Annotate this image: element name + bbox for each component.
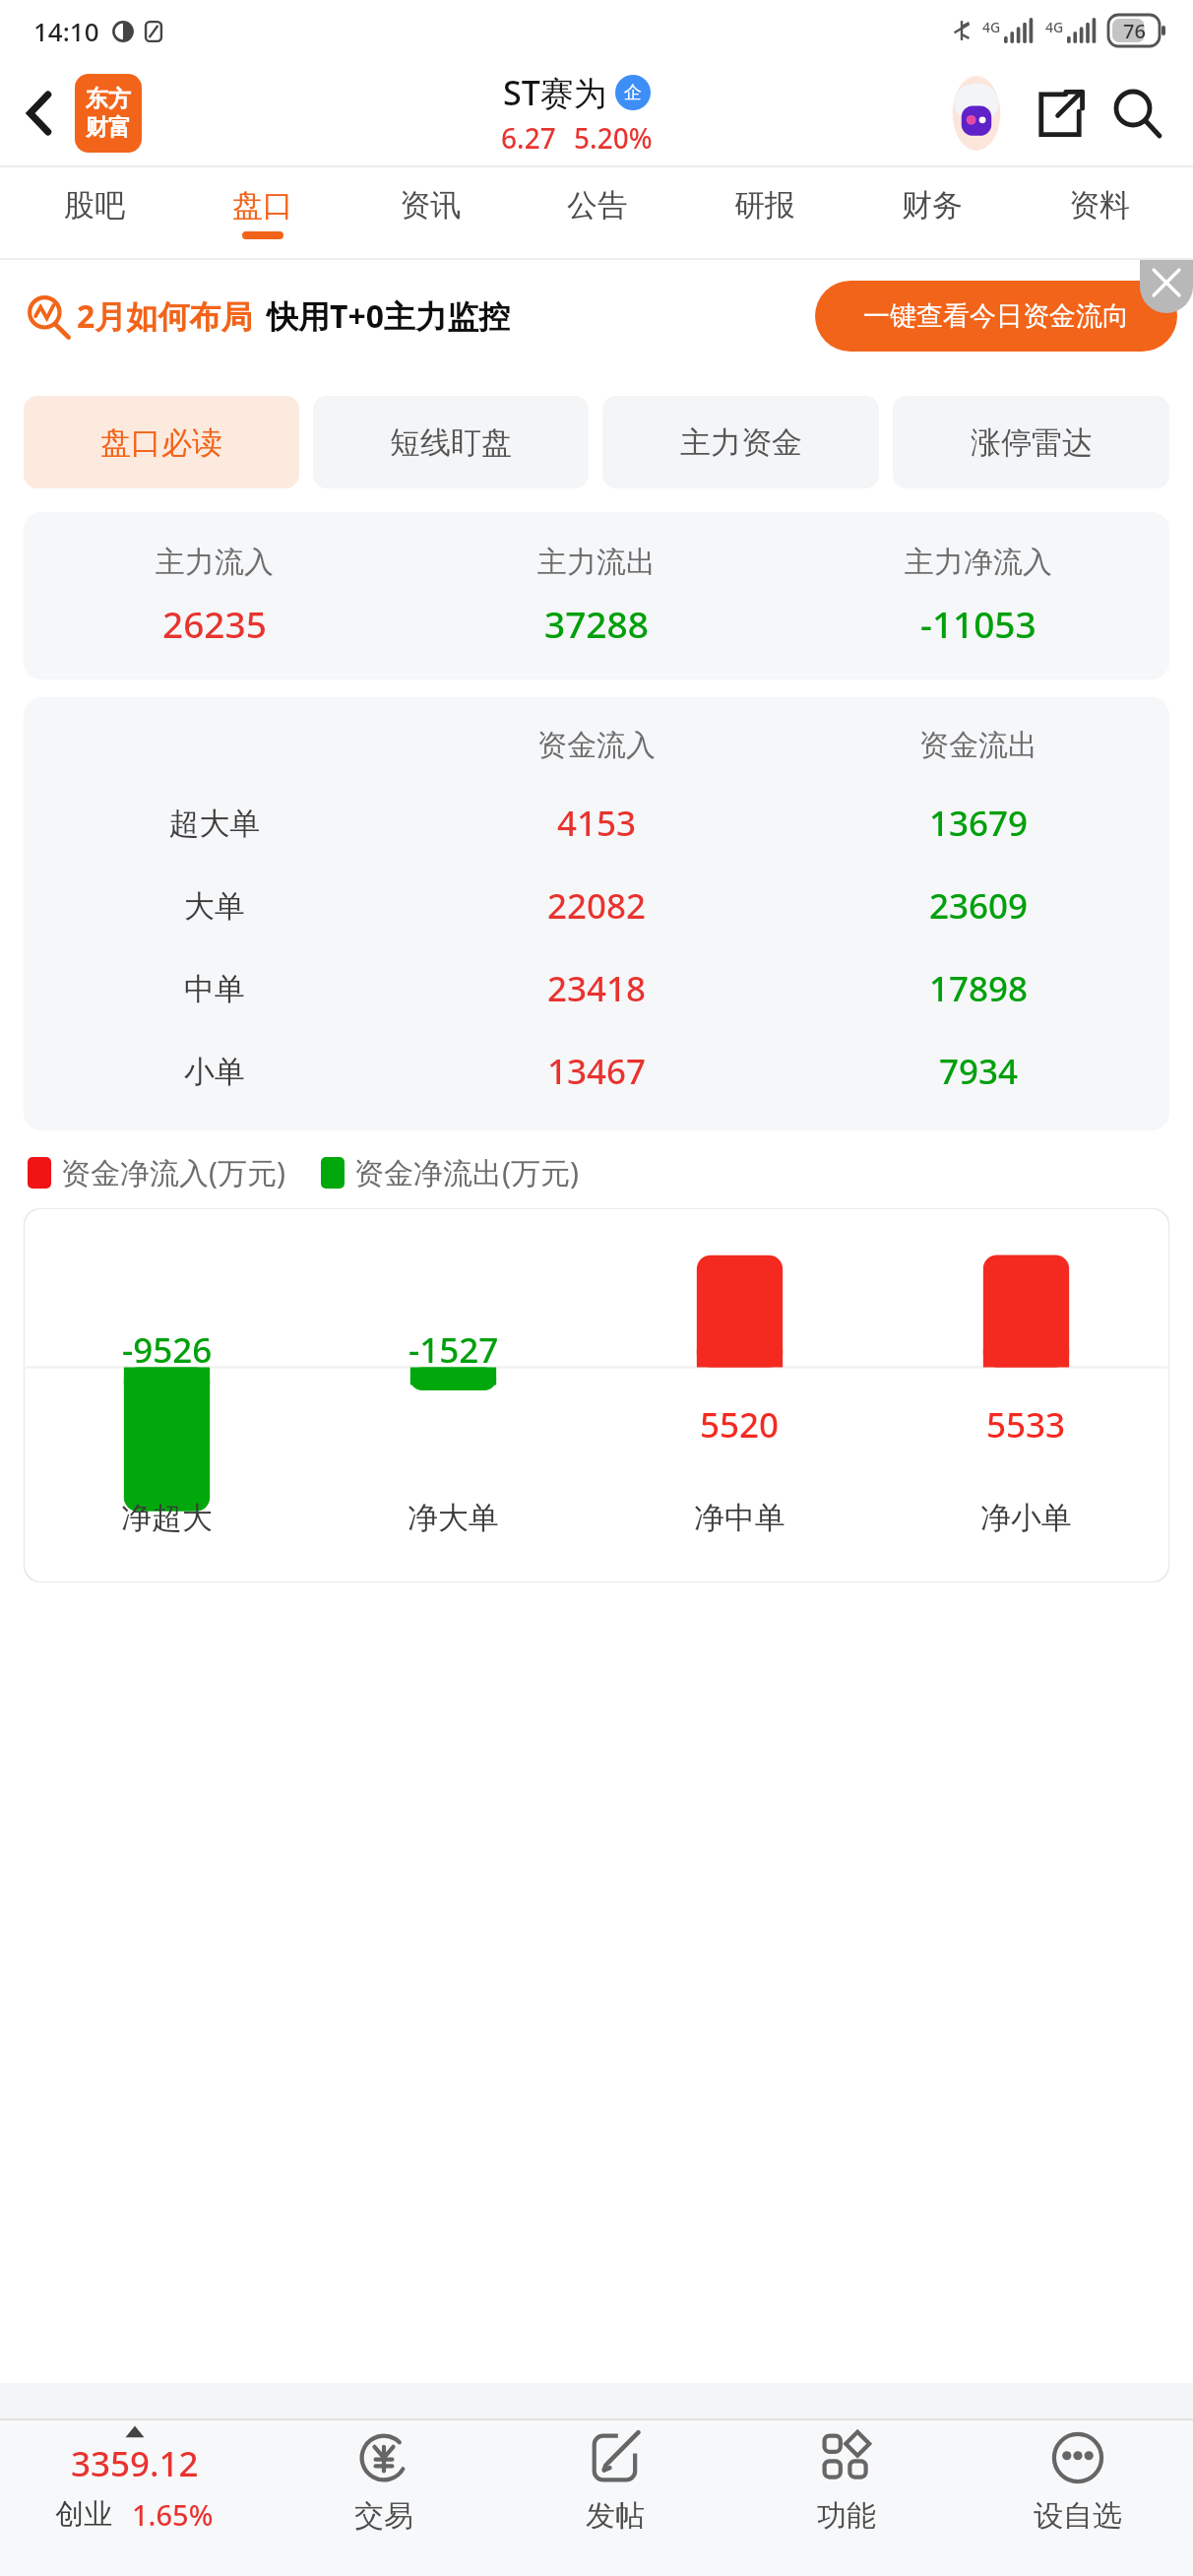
staticText: 5.20% (574, 119, 653, 157)
staticText: 5520 (700, 1401, 780, 1449)
button[interactable]: 小单 (24, 1048, 1169, 1095)
staticText: 5533 (986, 1401, 1066, 1449)
button[interactable]: AI助手 (939, 76, 1014, 151)
button[interactable]: 功能 (730, 2418, 962, 2576)
staticText: 公告 (567, 186, 628, 225)
staticText: 资金流入 (406, 727, 787, 764)
staticText: 财富 (86, 113, 131, 142)
button[interactable]: 一键查看今日资金流向 (815, 281, 1177, 352)
staticText: -1527 (408, 1326, 499, 1374)
staticText: 超大单 (24, 805, 406, 843)
staticText: 2月如何布局 (77, 294, 253, 338)
staticText: 13467 (406, 1048, 787, 1095)
staticText: 资讯 (400, 186, 461, 225)
button[interactable]: 返回 (6, 79, 75, 148)
button[interactable]: 财务 (848, 165, 1016, 260)
staticText: 净超大 (121, 1499, 213, 1537)
button[interactable]: 东方财富 (75, 74, 142, 153)
staticText: 14:10 (33, 14, 99, 48)
staticText: 17898 (787, 965, 1169, 1012)
staticText: 股吧 (64, 186, 125, 225)
button[interactable]: 盘口必读 (24, 396, 299, 488)
staticText: 交易 (354, 2497, 413, 2535)
staticText: 76 (1123, 18, 1146, 44)
staticText: 设自选 (1034, 2497, 1122, 2535)
button[interactable]: 搜索 (1102, 79, 1171, 148)
button[interactable]: 主力流入 (24, 512, 1169, 679)
staticText: 26235 (162, 599, 267, 648)
button[interactable]: 盘口 (178, 165, 346, 260)
staticText: 4G (1045, 18, 1064, 36)
staticText: 净中单 (694, 1499, 785, 1537)
staticText: 3359.12 (71, 2440, 199, 2487)
staticText: 东方 (86, 85, 131, 113)
button[interactable]: 发帖 (499, 2418, 730, 2576)
staticText: 7934 (787, 1048, 1169, 1095)
button[interactable]: 研报 (681, 165, 848, 260)
button[interactable]: 涨停雷达 (893, 396, 1169, 488)
staticText: 资金流出 (787, 727, 1169, 764)
staticText: 4153 (406, 800, 787, 847)
staticText: 企 (624, 82, 642, 104)
button[interactable]: 资讯 (346, 165, 514, 260)
staticText: 主力流出 (537, 544, 656, 581)
staticText: 净大单 (408, 1499, 499, 1537)
button[interactable]: 关闭 (1140, 260, 1193, 313)
staticText: 中单 (24, 970, 406, 1008)
staticText: 创业 (55, 2496, 112, 2533)
staticText: 1.65% (132, 2495, 214, 2534)
button[interactable]: 大单 (24, 882, 1169, 930)
button[interactable]: 交易 (268, 2418, 499, 2576)
staticText: 研报 (734, 186, 795, 225)
staticText: ST赛为 (503, 70, 607, 115)
staticText: 盘口必读 (100, 423, 222, 462)
staticText: 涨停雷达 (971, 423, 1093, 462)
staticText: 资金净流出(万元) (354, 1152, 579, 1192)
staticText: -9526 (122, 1326, 213, 1374)
staticText: 快用T+0主力监控 (267, 294, 511, 338)
button[interactable]: 中单 (24, 965, 1169, 1012)
staticText: 37288 (544, 599, 649, 648)
staticText: 功能 (817, 2497, 876, 2535)
staticText: 主力资金 (680, 423, 802, 462)
staticText: 资料 (1069, 186, 1130, 225)
staticText: 盘口 (232, 186, 293, 225)
button[interactable]: 公告 (514, 165, 681, 260)
button[interactable]: 短线盯盘 (313, 396, 589, 488)
staticText: 发帖 (586, 2497, 645, 2535)
button[interactable]: 资料 (1016, 165, 1183, 260)
staticText: 主力净流入 (905, 544, 1052, 581)
staticText: 22082 (406, 882, 787, 930)
staticText: 4G (982, 18, 1001, 36)
staticText: 净小单 (980, 1499, 1072, 1537)
button[interactable]: 设自选 (962, 2418, 1193, 2576)
staticText: 13679 (787, 800, 1169, 847)
staticText: 6.27 (501, 119, 556, 157)
staticText: 23609 (787, 882, 1169, 930)
button[interactable]: 2月如何布局 (0, 260, 1193, 372)
button[interactable]: 分享 (1028, 81, 1093, 146)
staticText: 一键查看今日资金流向 (863, 299, 1129, 333)
staticText: 资金净流入(万元) (61, 1152, 285, 1192)
button[interactable]: 超大单 (24, 800, 1169, 847)
staticText: 23418 (406, 965, 787, 1012)
staticText: 大单 (24, 887, 406, 926)
staticText: 小单 (24, 1053, 406, 1091)
staticText: 主力流入 (156, 544, 274, 581)
staticText: 短线盯盘 (390, 423, 512, 462)
button[interactable]: 股吧 (10, 165, 178, 260)
button[interactable]: 主力资金 (602, 396, 879, 488)
button[interactable]: -9526 (24, 1208, 1169, 1582)
button[interactable]: 3359.12 (0, 2418, 268, 2576)
staticText: -11053 (920, 599, 1036, 648)
staticText: 财务 (902, 186, 963, 225)
